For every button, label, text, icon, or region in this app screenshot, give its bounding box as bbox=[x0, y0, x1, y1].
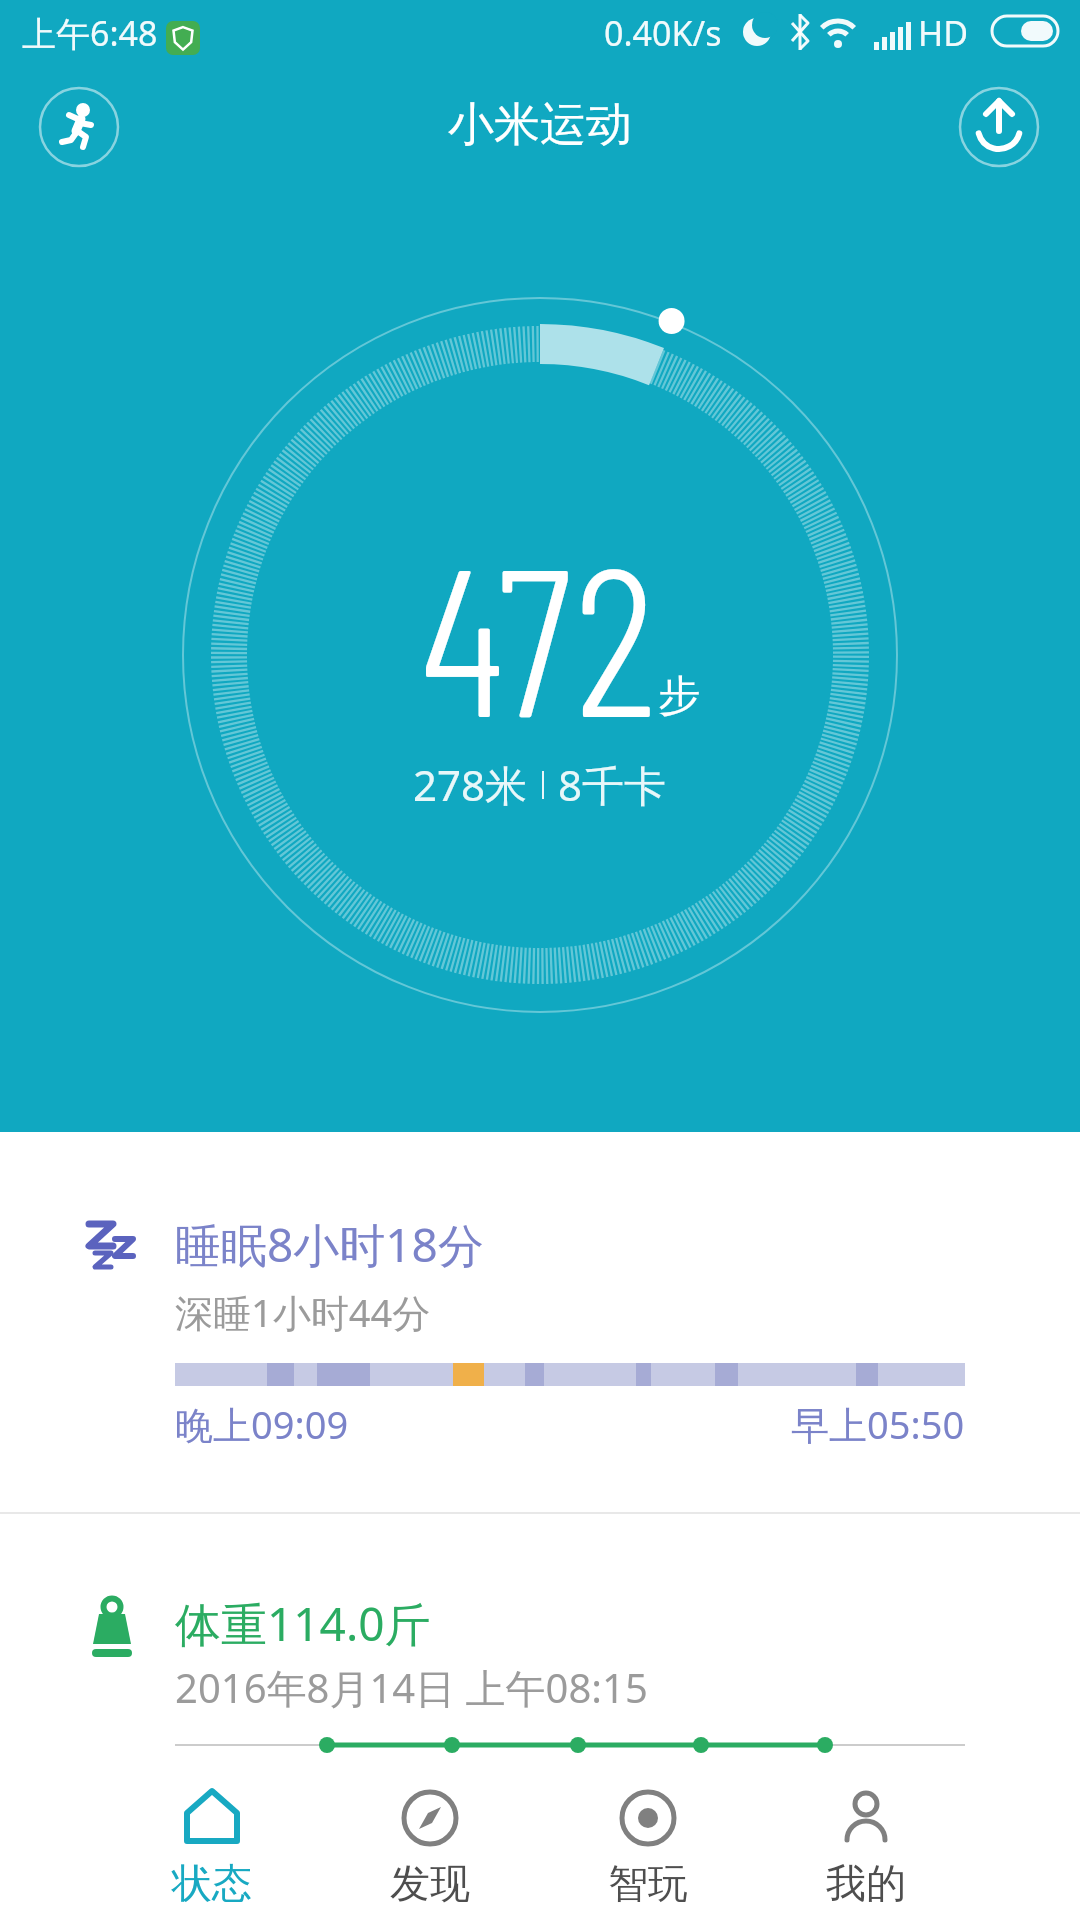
staticText: 278米 bbox=[413, 756, 528, 813]
staticText: 早上05:50 bbox=[791, 1398, 965, 1450]
staticText: 深睡1小时44分 bbox=[175, 1286, 431, 1338]
staticText: HD bbox=[918, 10, 969, 56]
staticText: 上午6:48 bbox=[22, 10, 158, 56]
button[interactable]: 智玩 bbox=[568, 1770, 728, 1915]
button[interactable] bbox=[38, 86, 120, 168]
staticText: 智玩 bbox=[608, 1858, 688, 1908]
button[interactable] bbox=[0, 1514, 1080, 1764]
staticText: 8千卡 bbox=[558, 756, 667, 813]
staticText: 472 bbox=[421, 508, 659, 759]
button[interactable]: 我的 bbox=[786, 1770, 946, 1915]
staticText: 体重114.0斤 bbox=[175, 1592, 431, 1655]
staticText: 晚上09:09 bbox=[175, 1398, 349, 1450]
button[interactable] bbox=[958, 86, 1040, 168]
staticText: 2016年8月14日 上午08:15 bbox=[175, 1660, 648, 1715]
button[interactable] bbox=[0, 1132, 1080, 1512]
staticText: 发现 bbox=[390, 1858, 470, 1908]
staticText: 状态 bbox=[172, 1858, 252, 1908]
staticText: 睡眠8小时18分 bbox=[175, 1213, 484, 1276]
staticText: 我的 bbox=[826, 1858, 906, 1908]
staticText: 小米运动 bbox=[448, 96, 632, 154]
button[interactable]: 状态 bbox=[132, 1770, 292, 1915]
staticText: 步 bbox=[658, 670, 700, 723]
button[interactable]: 发现 bbox=[350, 1770, 510, 1915]
staticText: 0.40K/s bbox=[604, 10, 722, 56]
